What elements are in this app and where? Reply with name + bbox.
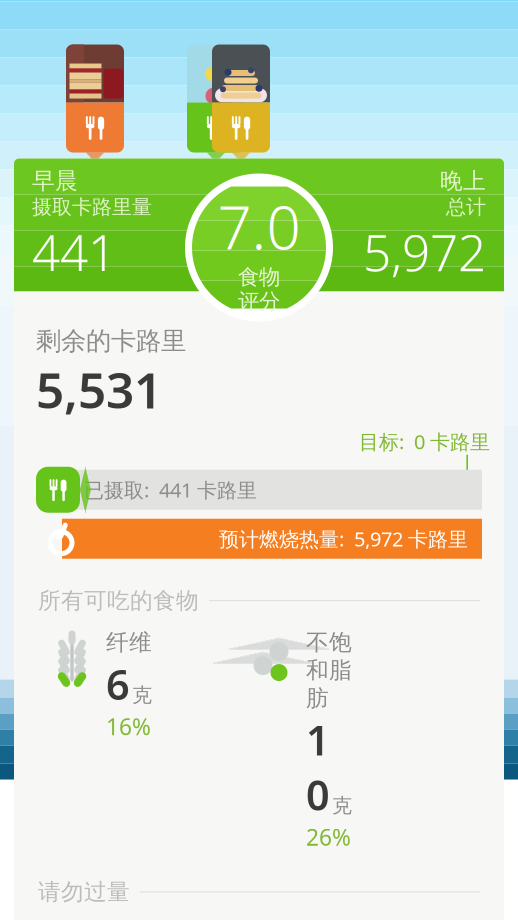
staticText: 6 [106,656,130,711]
staticText: 不饱和脂肪 [306,629,352,712]
staticText: 早晨 [32,167,78,195]
staticText: 10 [306,712,330,822]
staticText: 目标: 0 卡路里 [359,428,490,455]
staticText: 16% [106,711,151,741]
staticText: 剩余的卡路里 [36,325,186,357]
staticText: 纤维 [106,629,152,656]
staticText: 26% [306,822,351,852]
button[interactable]: 查看这一餐 [212,44,270,161]
staticText: 所有可吃的食物 [38,587,199,614]
staticText: 食物 [238,264,280,290]
staticText: 摄取卡路里量 [32,195,152,219]
staticText: 晚上 [440,167,486,195]
staticText: 克 [132,683,152,707]
staticText: 评分 [238,288,280,315]
staticText: 已摄取: 441 卡路里 [84,476,257,503]
staticText: 请勿过量 [38,878,130,906]
button[interactable]: 查看这一餐 [187,44,245,161]
staticText: 总计 [446,195,486,219]
staticText: 克 [332,793,352,818]
staticText: 预计燃烧热量: 5,972 卡路里 [219,525,468,552]
staticText: 441 [32,219,116,285]
staticText: 5,531 [36,357,162,422]
staticText: 5,972 [363,219,486,285]
staticText: 7.0 [217,186,300,266]
button[interactable]: 查看这一餐 [66,44,124,161]
